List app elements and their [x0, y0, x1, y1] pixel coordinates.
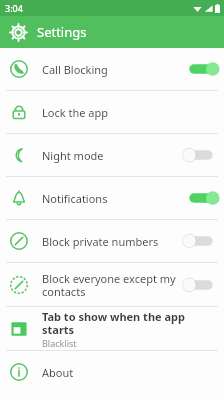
- button[interactable]: Block everyone except my contacts: [0, 263, 224, 306]
- staticText: Night mode: [42, 148, 104, 163]
- staticText: Block everyone except my contacts: [42, 271, 180, 299]
- button[interactable]: Notifications: [0, 177, 224, 219]
- staticText: 3:04: [5, 2, 23, 14]
- staticText: Settings: [37, 23, 87, 41]
- staticText: Call Blocking: [42, 62, 108, 77]
- button[interactable]: Call Blocking: [186, 60, 216, 78]
- button[interactable]: Block everyone except my contacts: [186, 276, 216, 294]
- button[interactable]: Notifications: [186, 189, 216, 207]
- button[interactable]: Night mode: [186, 146, 216, 164]
- staticText: About: [42, 365, 74, 380]
- button[interactable]: About: [0, 351, 224, 393]
- staticText: Blacklist: [42, 337, 77, 349]
- staticText: Notifications: [42, 191, 108, 206]
- other: Settings icon: [9, 23, 28, 42]
- staticText: Lock the app: [42, 105, 108, 120]
- button[interactable]: Block private numbers: [0, 220, 224, 262]
- staticText: Block private numbers: [42, 234, 159, 249]
- button[interactable]: Block private numbers: [186, 232, 216, 250]
- staticText: Tab to show when the app starts: [42, 309, 216, 337]
- button[interactable]: Lock the app: [0, 91, 224, 133]
- button[interactable]: Tab to show when the app starts: [0, 307, 224, 350]
- button[interactable]: Night mode: [0, 134, 224, 176]
- button[interactable]: Call Blocking: [0, 48, 224, 90]
